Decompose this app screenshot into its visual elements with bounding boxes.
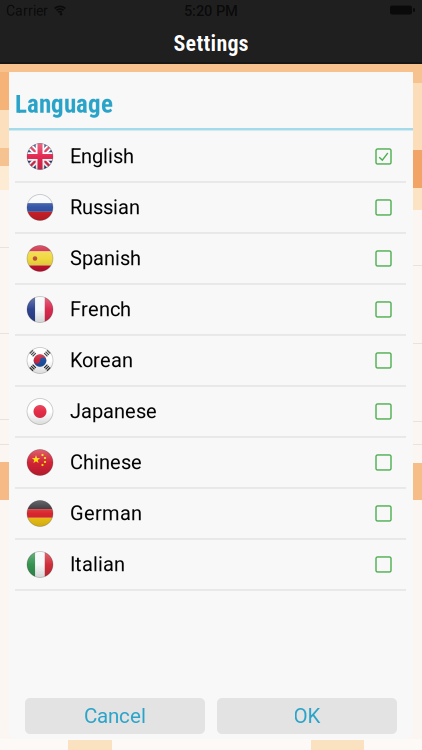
staticText: Settings — [173, 31, 248, 56]
staticText: French — [70, 298, 131, 321]
button[interactable]: English — [9, 131, 413, 182]
staticText: English — [70, 145, 134, 168]
button[interactable]: Japanese — [9, 386, 413, 437]
staticText: Carrier — [6, 3, 48, 19]
button[interactable]: Cancel — [25, 698, 205, 734]
staticText: 5:20 PM — [184, 2, 238, 20]
button[interactable]: French — [9, 284, 413, 335]
staticText: Cancel — [84, 704, 146, 728]
staticText: German — [70, 502, 142, 525]
button[interactable]: Spanish — [9, 233, 413, 284]
staticText: Spanish — [70, 247, 141, 270]
button[interactable]: OK — [217, 698, 397, 734]
staticText: Russian — [70, 196, 140, 219]
staticText: Korean — [70, 349, 133, 372]
button[interactable]: Chinese — [9, 437, 413, 488]
staticText: Language — [15, 89, 113, 119]
staticText: Italian — [70, 553, 125, 576]
button[interactable]: Russian — [9, 182, 413, 233]
staticText: Chinese — [70, 451, 142, 474]
button[interactable]: Italian — [9, 539, 413, 590]
button[interactable]: Korean — [9, 335, 413, 386]
button[interactable]: German — [9, 488, 413, 539]
staticText: Japanese — [70, 400, 157, 423]
staticText: OK — [293, 704, 320, 728]
